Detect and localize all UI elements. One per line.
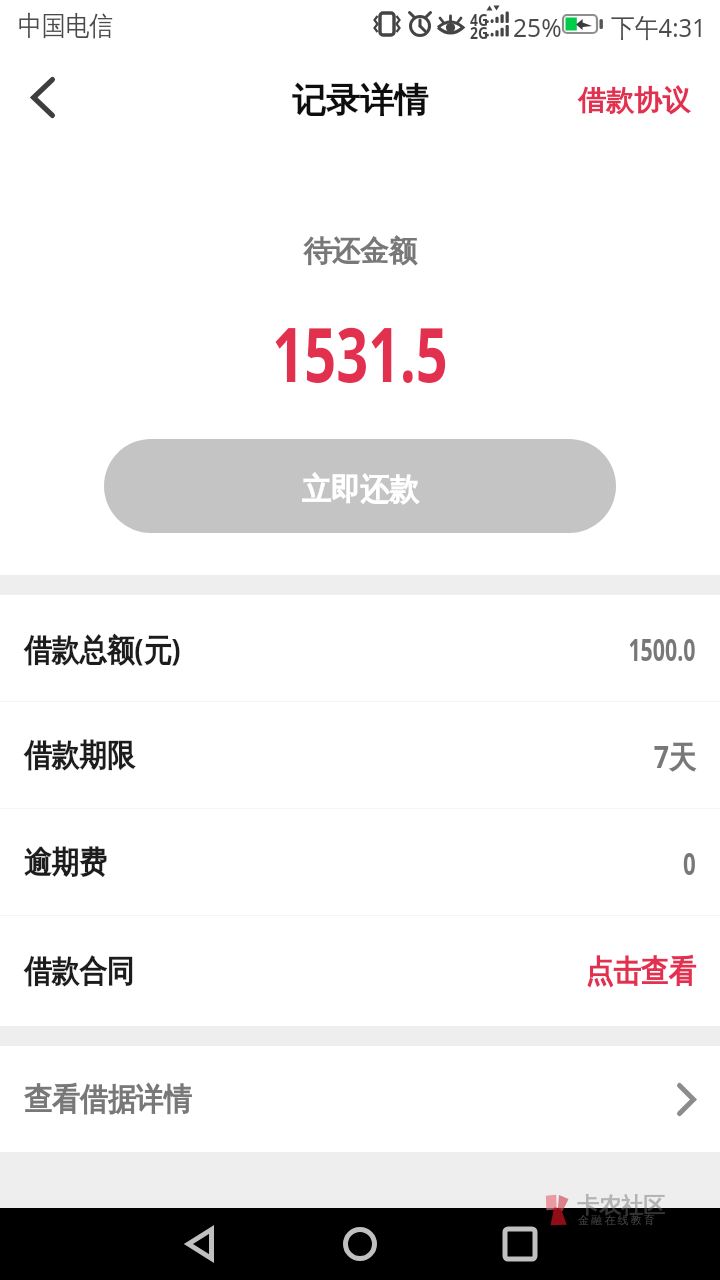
button[interactable]: Back	[0, 55, 84, 145]
staticText: 中国电信	[18, 9, 113, 43]
staticText: 25%	[513, 9, 562, 45]
staticText: 1500.0	[628, 628, 696, 670]
staticText: 借款期限	[24, 736, 134, 775]
button[interactable]: 借款协议	[548, 65, 720, 136]
staticText: 逾期费	[24, 843, 107, 882]
staticText: 查看借据详情	[24, 1080, 191, 1119]
button[interactable]: 借款期限	[0, 702, 720, 809]
staticText: 借款协议	[578, 83, 690, 118]
button[interactable]: 逾期费	[0, 809, 720, 916]
staticText: 金融在线教育	[578, 1213, 658, 1227]
staticText: 点击查看	[586, 952, 696, 991]
staticText: 记录详情	[292, 79, 428, 122]
button[interactable]: 立即还款	[104, 439, 616, 533]
button[interactable]: Back	[160, 1208, 240, 1280]
staticText: 卡农社区	[577, 1192, 665, 1220]
staticText: 2G	[470, 22, 489, 43]
staticText: 4G	[470, 9, 489, 30]
staticText: 下午4:31	[611, 9, 706, 45]
staticText: 借款总额(元)	[24, 628, 181, 670]
staticText: 0	[683, 842, 696, 884]
button[interactable]: 借款合同	[0, 916, 720, 1026]
staticText: 7天	[654, 735, 696, 777]
staticText: 立即还款	[302, 470, 418, 509]
button[interactable]: Recents	[480, 1208, 560, 1280]
button[interactable]: 查看借据详情	[0, 1046, 720, 1152]
button[interactable]: Home	[320, 1208, 400, 1280]
button[interactable]: 借款总额(元)	[0, 595, 720, 702]
staticText: 1531.5	[95, 301, 625, 405]
staticText: 待还金额	[7, 233, 713, 270]
staticText: 借款合同	[24, 952, 134, 991]
